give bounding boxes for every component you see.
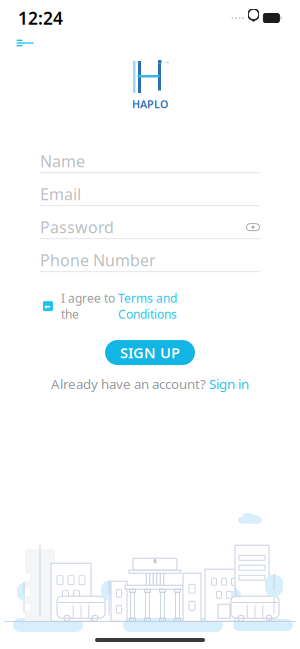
button[interactable]: Terms and Conditions: [118, 290, 177, 322]
staticText: SIGN UP: [120, 343, 180, 362]
staticText: Password: [40, 216, 114, 238]
button[interactable]: Sign in: [209, 375, 249, 393]
staticText: I agree to the: [61, 290, 115, 322]
button[interactable]: Show password: [246, 221, 260, 233]
button[interactable]: Back: [12, 32, 38, 54]
button[interactable]: SIGN UP: [105, 340, 195, 365]
staticText: 12:24: [18, 6, 63, 29]
staticText: Name: [40, 150, 85, 172]
staticText: Terms and Conditions: [118, 290, 177, 322]
staticText: Sign in: [209, 375, 249, 393]
staticText: ™: [165, 60, 169, 67]
staticText: Email: [40, 183, 81, 205]
staticText: Phone Number: [40, 249, 156, 271]
button[interactable]: Agree to terms: [41, 299, 55, 313]
staticText: Already have an account?: [51, 375, 206, 393]
staticText: HAPLO: [132, 97, 168, 111]
